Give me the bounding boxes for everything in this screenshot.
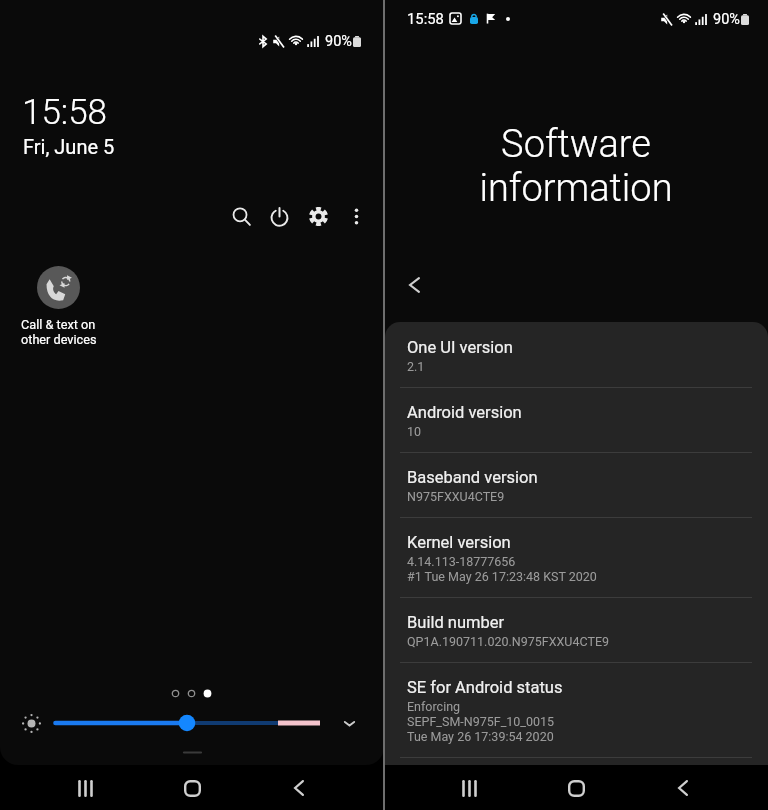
button[interactable]: Call & text on other devices: [37, 266, 80, 309]
staticText: Tue May 26 17:39:54 2020: [407, 729, 554, 744]
button[interactable]: Knox version: [385, 757, 768, 766]
staticText: 15:58: [407, 10, 444, 27]
staticText: Fri, June 5: [23, 135, 115, 158]
button[interactable]: Kernel version: [385, 517, 768, 597]
button[interactable]: Navigate up: [398, 269, 430, 301]
staticText: Enforcing: [407, 699, 461, 714]
button[interactable]: Baseband version: [385, 452, 768, 517]
staticText: Build number: [407, 613, 505, 632]
staticText: 90%: [325, 33, 352, 50]
staticText: Baseband version: [407, 468, 538, 487]
button[interactable]: Search: [226, 201, 256, 231]
button[interactable]: Back: [668, 773, 698, 803]
button[interactable]: Home: [177, 773, 207, 803]
button[interactable]: SE for Android status: [385, 662, 768, 757]
staticText: #1 Tue May 26 17:23:48 KST 2020: [407, 569, 597, 584]
staticText: One UI version: [407, 338, 513, 357]
button[interactable]: More options: [341, 201, 371, 231]
button[interactable]: Recent apps: [70, 773, 100, 803]
staticText: QP1A.190711.020.N975FXXU4CTE9: [407, 634, 610, 649]
button[interactable]: Back: [284, 773, 314, 803]
staticText: Call & text on other devices: [21, 317, 97, 347]
button[interactable]: Expand quick settings: [338, 712, 360, 734]
button[interactable]: Power off: [264, 201, 294, 231]
button[interactable]: Build number: [385, 597, 768, 662]
staticText: N975FXXU4CTE9: [407, 489, 505, 504]
staticText: 10: [407, 424, 422, 439]
button[interactable]: Android version: [385, 387, 768, 452]
staticText: Android version: [407, 403, 522, 422]
staticText: 4.14.113-18777656: [407, 554, 516, 569]
button[interactable]: Home: [561, 773, 591, 803]
button[interactable]: Settings: [303, 201, 333, 231]
button[interactable]: Recent apps: [454, 773, 484, 803]
staticText: 2.1: [407, 359, 425, 374]
staticText: 15:58: [22, 92, 108, 133]
staticText: 90%: [713, 11, 740, 28]
staticText: Software information: [479, 122, 673, 210]
button[interactable]: One UI version: [385, 322, 768, 387]
staticText: SEPF_SM-N975F_10_0015: [407, 714, 555, 729]
staticText: SE for Android status: [407, 678, 563, 697]
staticText: Kernel version: [407, 533, 511, 552]
